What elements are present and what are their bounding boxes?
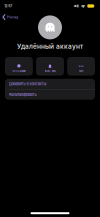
staticText: Добавить в контакты (9, 82, 47, 86)
button[interactable]: сообщение (5, 57, 33, 76)
staticText: сообщение (12, 69, 25, 73)
staticText: ещё (79, 69, 83, 73)
staticText: Разблокировать (9, 92, 37, 97)
staticText: выкл. звук (44, 69, 55, 73)
button[interactable]: выкл. звук (36, 57, 64, 76)
button[interactable]: ещё (67, 57, 95, 76)
staticText: Назад (7, 15, 18, 19)
button[interactable]: Добавить в контакты (5, 79, 95, 89)
staticText: 12:57 (4, 4, 12, 8)
button[interactable]: Назад (0, 12, 100, 23)
staticText: Удалённый аккаунт (17, 42, 83, 50)
button[interactable]: Разблокировать (5, 89, 95, 100)
